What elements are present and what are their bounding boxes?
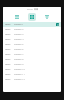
- staticText: Caption 2: [14, 28, 24, 31]
- staticText: Label: [5, 78, 11, 81]
- button[interactable]: Label: [3, 77, 61, 82]
- button[interactable]: Label: [3, 22, 61, 27]
- button[interactable]: Label: [3, 72, 61, 77]
- staticText: Label: [5, 53, 11, 56]
- staticText: Caption 1: [14, 23, 24, 26]
- staticText: Caption 9: [14, 63, 24, 66]
- staticText: Caption 11: [14, 73, 25, 76]
- staticText: Label: [5, 63, 11, 66]
- staticText: Caption 8: [14, 58, 24, 61]
- staticText: Label: [5, 33, 11, 36]
- staticText: Label: [5, 58, 11, 61]
- staticText: Label: [5, 28, 11, 31]
- button[interactable]: List view: [13, 13, 21, 21]
- staticText: Label: [5, 43, 11, 46]
- button[interactable]: Label: [3, 32, 61, 37]
- staticText: Caption 3: [14, 33, 24, 36]
- button[interactable]: Label: [3, 62, 61, 67]
- button[interactable]: Label: [3, 37, 61, 42]
- button[interactable]: Label: [3, 67, 61, 72]
- staticText: Caption 10: [14, 68, 25, 71]
- staticText: Label: [5, 68, 11, 71]
- button[interactable]: Label: [3, 27, 61, 32]
- button[interactable]: Selected item: [56, 23, 59, 26]
- staticText: Label: [5, 48, 11, 51]
- button[interactable]: Grid view: [28, 13, 36, 21]
- staticText: Caption 7: [14, 53, 24, 56]
- button[interactable]: Label: [3, 57, 61, 62]
- staticText: Caption 12: [14, 78, 25, 81]
- button[interactable]: Label: [3, 52, 61, 57]
- staticText: Label: [5, 73, 11, 76]
- button[interactable]: More options: [43, 13, 51, 21]
- staticText: Caption 5: [14, 43, 24, 46]
- button[interactable]: Label: [3, 42, 61, 47]
- staticText: Label: [5, 23, 11, 26]
- staticText: Caption 6: [14, 48, 24, 51]
- staticText: Caption 4: [14, 38, 24, 41]
- staticText: Label: [5, 38, 11, 41]
- button[interactable]: Label: [3, 47, 61, 52]
- staticText: 00:00 ▮▮▮: [27, 8, 38, 11]
